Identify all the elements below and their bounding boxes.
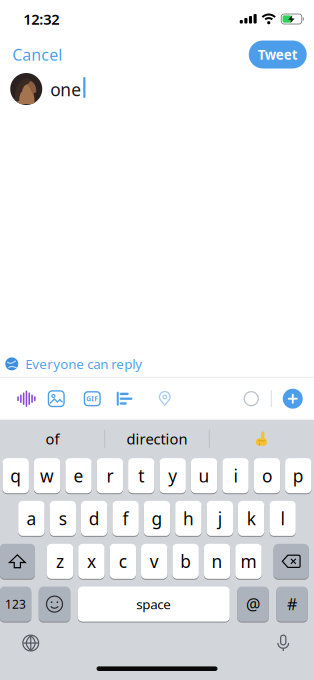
- staticText: k: [247, 507, 256, 530]
- staticText: s: [59, 507, 67, 530]
- staticText: h: [183, 507, 194, 530]
- staticText: direction: [126, 429, 187, 448]
- staticText: @: [246, 593, 260, 615]
- staticText: j: [218, 507, 222, 530]
- staticText: w: [40, 464, 54, 487]
- staticText: v: [150, 550, 159, 573]
- staticText: 123: [5, 596, 26, 612]
- staticText: a: [26, 507, 36, 530]
- staticText: n: [211, 550, 222, 573]
- staticText: z: [56, 550, 64, 573]
- staticText: one: [50, 78, 81, 101]
- staticText: Everyone can reply: [25, 355, 142, 373]
- staticText: y: [168, 464, 177, 487]
- staticText: f: [123, 507, 129, 530]
- staticText: t: [138, 464, 144, 487]
- staticText: d: [89, 507, 100, 530]
- staticText: b: [180, 550, 191, 573]
- staticText: Cancel: [12, 44, 62, 65]
- staticText: i: [233, 464, 237, 487]
- staticText: of: [45, 429, 59, 448]
- staticText: l: [281, 507, 285, 530]
- staticText: 12:32: [23, 9, 59, 29]
- staticText: GIF: [86, 394, 98, 403]
- staticText: u: [199, 464, 210, 487]
- staticText: e: [73, 464, 83, 487]
- staticText: o: [262, 464, 272, 487]
- staticText: g: [151, 507, 162, 530]
- staticText: Tweet: [258, 46, 298, 63]
- staticText: p: [293, 464, 304, 487]
- staticText: space: [136, 595, 171, 613]
- staticText: x: [87, 550, 96, 573]
- staticText: r: [106, 464, 113, 487]
- staticText: m: [240, 550, 256, 573]
- staticText: #: [287, 593, 297, 615]
- staticText: c: [119, 550, 127, 573]
- staticText: q: [10, 464, 21, 487]
